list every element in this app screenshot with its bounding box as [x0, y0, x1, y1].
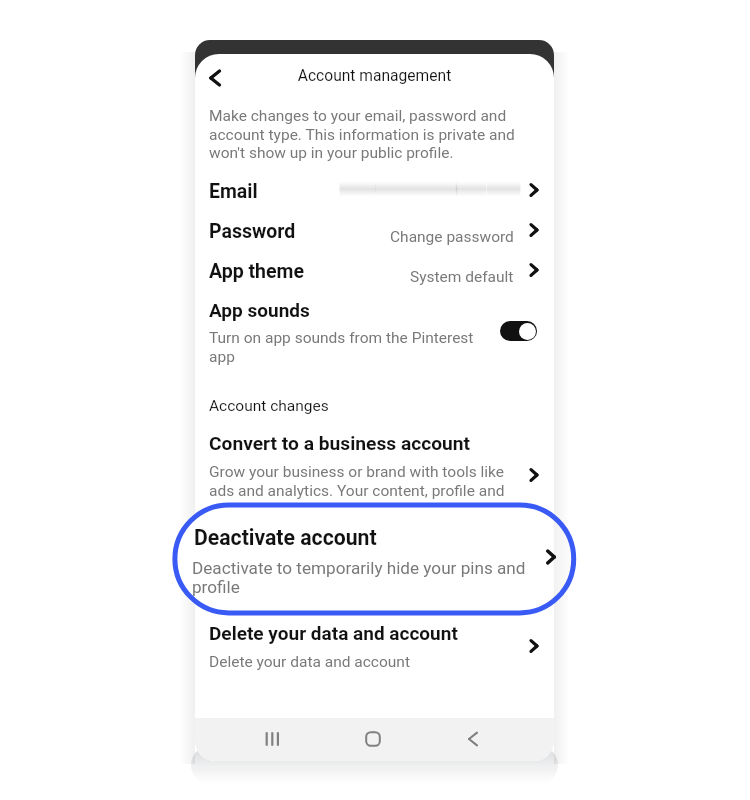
staticText: Grow your business or brand with tools l…	[209, 463, 514, 500]
staticText: System default	[410, 268, 514, 286]
staticText: Account changes	[209, 397, 329, 415]
button[interactable]: App sounds	[195, 298, 554, 374]
staticText: Convert to a business account	[209, 432, 471, 455]
staticText: Email	[209, 180, 258, 203]
staticText: Delete your data and account	[209, 622, 458, 644]
button[interactable]: Password	[195, 217, 554, 257]
button[interactable]: Convert to a business account	[195, 431, 554, 497]
staticText: Turn on app sounds from the Pinterest ap…	[209, 329, 489, 366]
button[interactable]: Deactivate account	[172, 502, 576, 616]
button[interactable]: Back	[195, 58, 235, 98]
button[interactable]: Delete your data and account	[195, 621, 554, 681]
staticText: Account management	[195, 67, 554, 85]
staticText: App sounds	[209, 299, 310, 321]
button[interactable]: Email	[195, 177, 554, 217]
button[interactable]: App sounds toggle	[500, 321, 537, 341]
staticText: Deactivate to temporarily hide your pins…	[192, 558, 537, 598]
staticText: Delete your data and account	[209, 653, 410, 671]
staticText: App theme	[209, 260, 304, 283]
staticText: Make changes to your email, password and…	[209, 107, 524, 161]
staticText: Password	[209, 220, 296, 243]
button[interactable]: App theme	[195, 257, 554, 297]
button[interactable]: Home	[353, 719, 393, 759]
staticText: Change password	[390, 228, 514, 246]
button[interactable]: Recent apps	[253, 719, 293, 759]
staticText: Deactivate account	[194, 525, 377, 550]
button[interactable]: Back	[453, 719, 493, 759]
